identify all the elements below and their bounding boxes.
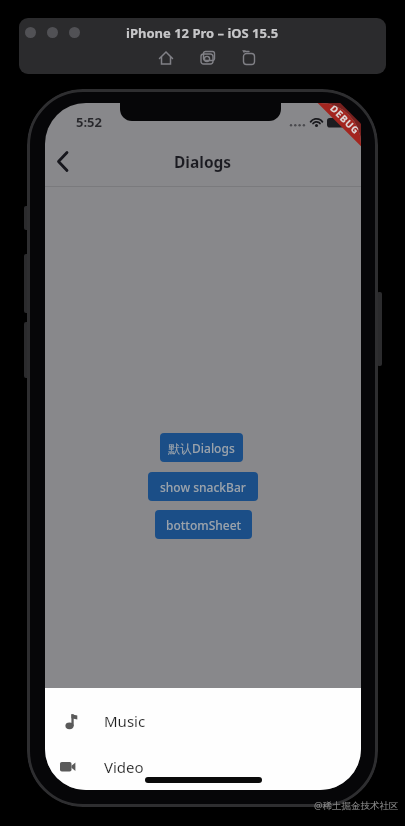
button[interactable]: 默认Dialogs — [160, 433, 243, 462]
staticText: DEBUG — [327, 103, 361, 137]
staticText: 5:52 — [76, 113, 102, 131]
button[interactable]: Video — [45, 744, 361, 790]
staticText: iPhone 12 Pro – iOS 15.5 — [126, 24, 279, 42]
button[interactable]: bottomSheet — [155, 510, 252, 539]
button[interactable]: show snackBar — [148, 472, 258, 501]
button[interactable] — [47, 27, 58, 38]
button[interactable]: Music — [45, 698, 361, 744]
staticText: Video — [104, 757, 144, 777]
staticText: @稀土掘金技术社区 — [314, 799, 399, 812]
button[interactable] — [199, 49, 217, 67]
button[interactable] — [69, 27, 80, 38]
button[interactable] — [158, 50, 174, 66]
button[interactable] — [57, 151, 69, 172]
button[interactable] — [25, 27, 36, 38]
button[interactable] — [241, 50, 257, 66]
staticText: 默认Dialogs — [168, 440, 235, 456]
staticText: bottomSheet — [166, 517, 242, 533]
staticText: Dialogs — [174, 151, 232, 172]
staticText: show snackBar — [160, 479, 246, 495]
staticText: Music — [104, 711, 146, 731]
